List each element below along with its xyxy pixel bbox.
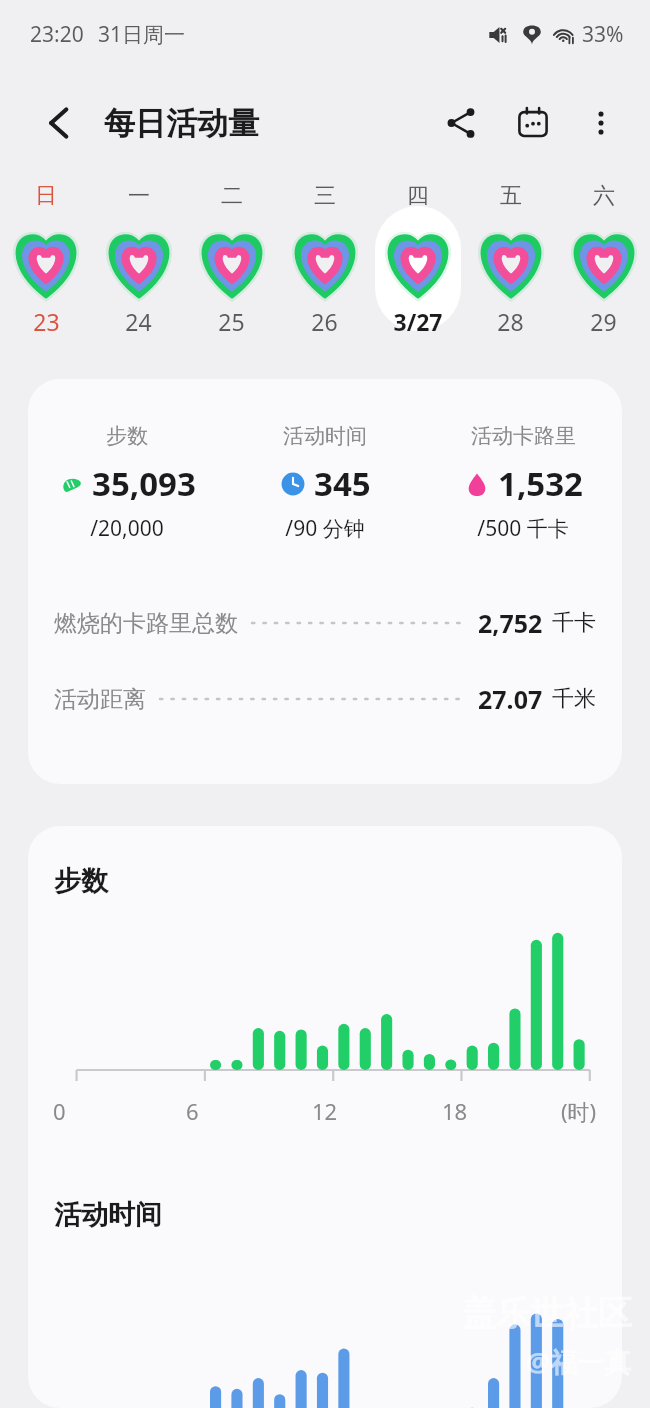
- button[interactable]: 活动时间: [226, 423, 424, 543]
- button[interactable]: 三: [278, 178, 371, 353]
- staticText: 每日活动量: [104, 104, 259, 143]
- staticText: 活动距离: [54, 685, 146, 714]
- button[interactable]: More options: [574, 96, 628, 150]
- staticText: 29: [590, 306, 617, 337]
- staticText: 33%: [582, 20, 624, 49]
- staticText: 1,532: [498, 461, 583, 506]
- staticText: 12: [312, 1096, 338, 1126]
- staticText: 一: [128, 182, 150, 210]
- button[interactable]: 活动距离: [54, 677, 596, 721]
- staticText: 26: [311, 306, 338, 337]
- staticText: 6: [186, 1096, 199, 1126]
- staticText: 2,752: [478, 606, 543, 640]
- button[interactable]: 步数: [28, 379, 622, 784]
- staticText: 345: [314, 461, 371, 506]
- staticText: 23: [33, 306, 60, 337]
- staticText: 18: [442, 1096, 468, 1126]
- button[interactable]: 步数: [28, 826, 622, 1408]
- staticText: 23:20: [30, 20, 84, 49]
- staticText: (时): [561, 1096, 597, 1126]
- staticText: 35,093: [92, 461, 196, 506]
- staticText: 四: [407, 182, 429, 210]
- button[interactable]: 活动卡路里: [424, 423, 622, 543]
- staticText: 六: [593, 182, 615, 210]
- button[interactable]: Share: [434, 96, 488, 150]
- button[interactable]: 六: [557, 178, 650, 353]
- staticText: 三: [314, 182, 336, 210]
- staticText: 0: [53, 1096, 66, 1126]
- staticText: 日: [35, 182, 57, 210]
- button[interactable]: 一: [92, 178, 185, 353]
- staticText: /20,000: [90, 514, 164, 543]
- staticText: 步数: [54, 864, 108, 898]
- staticText: 31日周一: [98, 20, 186, 49]
- staticText: 活动时间: [54, 1198, 162, 1232]
- staticText: 活动卡路里: [471, 423, 576, 449]
- button[interactable]: 日: [0, 178, 92, 353]
- staticText: /500 千卡: [477, 514, 569, 543]
- button[interactable]: 五: [464, 178, 557, 353]
- button[interactable]: 四: [371, 178, 464, 353]
- button[interactable]: 步数: [28, 423, 226, 543]
- button[interactable]: 燃烧的卡路里总数: [54, 601, 596, 645]
- staticText: 27.07: [478, 682, 543, 716]
- staticText: 步数: [106, 423, 148, 449]
- staticText: 24: [125, 306, 152, 337]
- staticText: @福一真: [526, 1343, 632, 1380]
- staticText: 活动时间: [283, 423, 367, 449]
- staticText: 盖乐世社区: [462, 1292, 632, 1335]
- staticText: 28: [497, 306, 524, 337]
- staticText: 25: [218, 306, 245, 337]
- staticText: 五: [500, 182, 522, 210]
- staticText: 燃烧的卡路里总数: [54, 609, 238, 638]
- staticText: 二: [221, 182, 243, 210]
- staticText: 千米: [552, 685, 596, 713]
- staticText: 3/27: [393, 306, 443, 337]
- staticText: /90 分钟: [285, 514, 365, 543]
- staticText: 千卡: [552, 609, 596, 637]
- button[interactable]: 二: [185, 178, 278, 353]
- button[interactable]: Back: [34, 97, 86, 149]
- button[interactable]: Calendar: [506, 96, 560, 150]
